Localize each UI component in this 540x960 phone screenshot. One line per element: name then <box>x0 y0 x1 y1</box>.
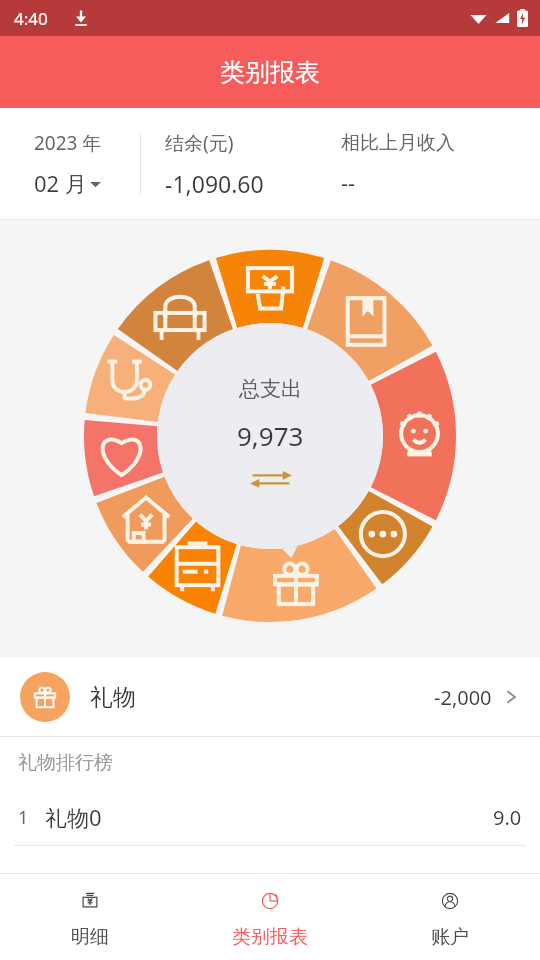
staticText: 相比上月收入 <box>341 131 455 155</box>
staticText: 02 月 <box>34 168 87 198</box>
staticText: 2023 年 <box>34 130 102 156</box>
staticText: 礼物 <box>90 683 136 712</box>
button[interactable]: Switch income expense <box>248 467 294 491</box>
button[interactable]: 类别报表 <box>180 874 360 960</box>
staticText: 4:40 <box>14 7 48 30</box>
button[interactable]: 账户 <box>360 874 540 960</box>
staticText: 账户 <box>431 925 469 949</box>
button[interactable]: 类别报表 <box>0 36 540 108</box>
staticText: 结余(元) <box>165 130 234 156</box>
button[interactable]: 1 <box>0 789 540 845</box>
staticText: -2,000 <box>434 684 492 711</box>
staticText: 9,973 <box>237 418 304 453</box>
staticText: -1,090.60 <box>165 168 264 199</box>
staticText: 9.0 <box>493 804 522 831</box>
staticText: -- <box>341 167 356 197</box>
staticText: 总支出 <box>239 376 302 402</box>
button[interactable]: 明细 <box>0 874 180 960</box>
button[interactable]: 礼物 <box>0 658 540 736</box>
staticText: 1 <box>18 805 29 830</box>
staticText: 礼物排行榜 <box>18 751 113 775</box>
button[interactable]: 2023 年 <box>0 108 140 220</box>
staticText: 类别报表 <box>220 57 320 88</box>
staticText: 类别报表 <box>232 925 308 949</box>
staticText: 明细 <box>71 925 109 949</box>
staticText: 礼物0 <box>45 802 102 832</box>
